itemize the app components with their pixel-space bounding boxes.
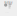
staticText: Today (4, 1, 12, 4)
button[interactable] (4, 3, 11, 8)
